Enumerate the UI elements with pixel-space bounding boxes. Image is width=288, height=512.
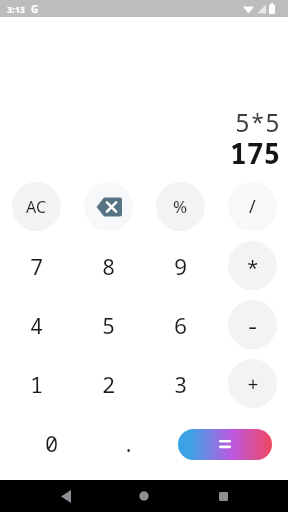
staticText: 0 (45, 428, 59, 458)
staticText: 3:13 (7, 3, 25, 15)
button[interactable]: 0 (16, 413, 88, 472)
button[interactable]: AC (12, 182, 61, 231)
staticText: 5 (102, 310, 116, 340)
staticText: 1 (30, 369, 44, 399)
button[interactable]: + (228, 359, 277, 408)
button[interactable] (53, 483, 79, 509)
staticText: + (247, 370, 259, 397)
button[interactable]: 7 (12, 241, 61, 290)
staticText: 5*5 (235, 105, 281, 139)
staticText: . (122, 428, 136, 458)
button[interactable]: - (228, 300, 277, 349)
staticText: 8 (102, 251, 116, 281)
button[interactable] (178, 429, 272, 460)
staticText: 7 (30, 251, 44, 281)
staticText: 4 (30, 310, 44, 340)
button[interactable]: / (228, 182, 277, 231)
staticText: 3 (174, 369, 188, 399)
button[interactable]: * (228, 241, 277, 290)
staticText: - (246, 310, 260, 340)
button[interactable]: 8 (84, 241, 133, 290)
button[interactable]: 4 (12, 300, 61, 349)
button[interactable]: 6 (156, 300, 205, 349)
button[interactable]: % (156, 182, 205, 231)
button[interactable]: 5 (84, 300, 133, 349)
staticText: / (249, 194, 256, 219)
staticText: % (173, 195, 188, 218)
button[interactable]: . (93, 413, 165, 472)
staticText: * (246, 253, 260, 283)
staticText: 2 (102, 369, 116, 399)
staticText: 6 (174, 310, 188, 340)
button[interactable] (210, 483, 236, 509)
button[interactable]: 1 (12, 359, 61, 408)
staticText: G (31, 2, 39, 16)
staticText: 9 (174, 251, 188, 281)
button[interactable]: 3 (156, 359, 205, 408)
button[interactable]: 2 (84, 359, 133, 408)
button[interactable] (84, 182, 133, 231)
staticText: 175 (230, 134, 281, 172)
staticText: AC (26, 196, 47, 218)
button[interactable]: 9 (156, 241, 205, 290)
button[interactable] (131, 483, 157, 509)
